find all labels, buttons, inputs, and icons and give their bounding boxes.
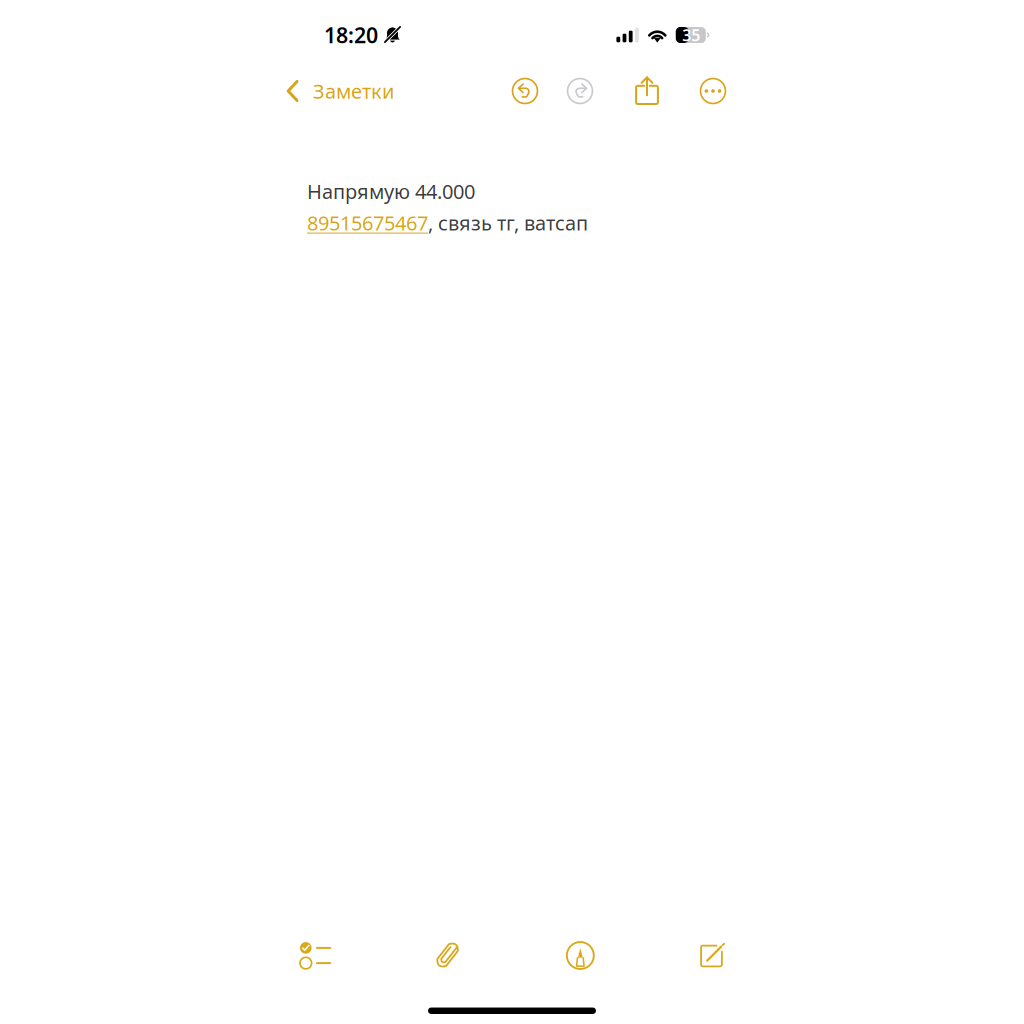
button[interactable]: Redo (565, 75, 595, 107)
button[interactable]: More (698, 75, 728, 107)
staticText: 18:20 (324, 21, 378, 49)
button[interactable]: Share (632, 75, 662, 107)
button[interactable]: Заметки (274, 72, 394, 110)
staticText: Напрямую 44.000 (307, 178, 475, 205)
staticText: Заметки (313, 78, 394, 104)
staticText: 89515675467 (307, 210, 428, 236)
button[interactable]: Undo (510, 75, 540, 107)
button[interactable]: Checklist (289, 932, 341, 976)
button[interactable]: Markup (554, 932, 606, 976)
button[interactable]: New note (687, 932, 739, 976)
staticText: , связь тг, ватсап (428, 210, 588, 236)
staticText: 35 (682, 24, 700, 46)
button[interactable]: Attach (422, 932, 474, 976)
